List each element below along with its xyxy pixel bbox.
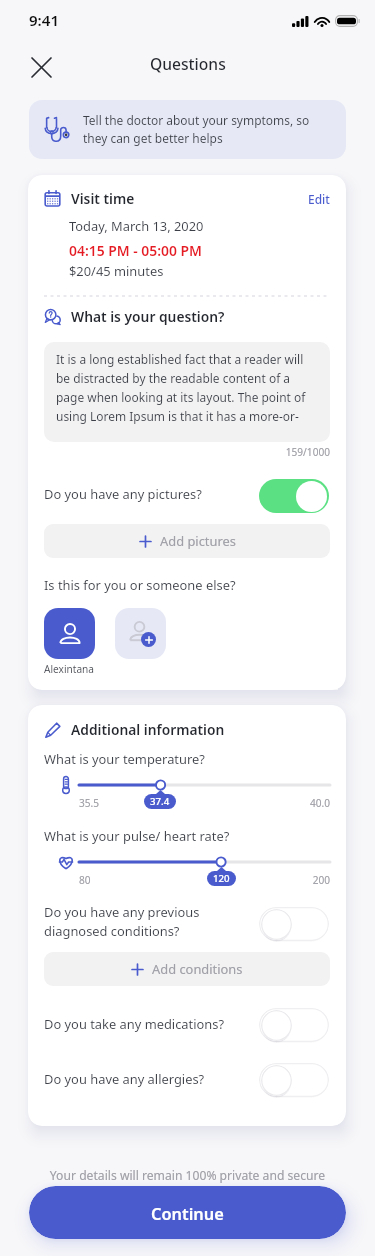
staticText: 159/1000 <box>44 445 330 459</box>
staticText: It is a long established fact that a rea… <box>56 351 306 424</box>
staticText: Is this for you or someone else? <box>44 576 236 594</box>
button[interactable]: Close <box>23 49 59 85</box>
staticText: 9:41 <box>29 10 60 31</box>
button[interactable]: Toggle off <box>259 907 329 941</box>
button[interactable]: Toggle off <box>259 1008 329 1042</box>
button[interactable] <box>79 854 330 870</box>
button[interactable]: It is a long established fact that a rea… <box>44 342 330 442</box>
staticText: Additional information <box>71 720 225 739</box>
button[interactable]: Edit <box>308 191 330 207</box>
staticText: Add pictures <box>160 532 236 550</box>
staticText: What is your temperature? <box>44 750 205 768</box>
staticText: 40.0 <box>270 796 330 810</box>
staticText: Do you have any previous diagnosed condi… <box>44 903 200 940</box>
staticText: Do you have any pictures? <box>44 485 202 503</box>
staticText: Alexintana <box>44 662 95 676</box>
staticText: Visit time <box>71 189 135 208</box>
button[interactable]: Toggle off <box>259 1063 329 1097</box>
button[interactable]: Toggle on <box>259 479 329 513</box>
staticText: What is your question? <box>71 307 225 326</box>
staticText: Questions <box>150 53 226 74</box>
button[interactable] <box>79 777 330 793</box>
staticText: Do you have any allergies? <box>44 1070 205 1088</box>
staticText: Your details will remain 100% private an… <box>0 1167 375 1184</box>
button[interactable]: Add pictures <box>44 524 330 558</box>
staticText: 120 <box>213 872 230 885</box>
staticText: 200 <box>270 873 330 887</box>
button[interactable]: Alexintana <box>44 608 95 659</box>
staticText: 37.4 <box>150 795 170 808</box>
staticText: What is your pulse/ heart rate? <box>44 827 230 845</box>
staticText: 80 <box>79 873 91 887</box>
staticText: Add conditions <box>152 960 243 978</box>
staticText: 04:15 PM - 05:00 PM <box>69 241 203 260</box>
staticText: $20/45 minutes <box>69 262 164 280</box>
button[interactable]: Add person <box>115 608 166 659</box>
staticText: Edit <box>308 191 330 207</box>
staticText: 35.5 <box>79 796 100 810</box>
button[interactable]: Continue <box>29 1186 346 1239</box>
staticText: Today, March 13, 2020 <box>69 217 204 235</box>
button[interactable]: Add conditions <box>44 952 330 986</box>
staticText: Tell the doctor about your symptoms, so … <box>83 112 310 147</box>
staticText: Continue <box>151 1202 224 1224</box>
staticText: Do you take any medications? <box>44 1015 225 1033</box>
